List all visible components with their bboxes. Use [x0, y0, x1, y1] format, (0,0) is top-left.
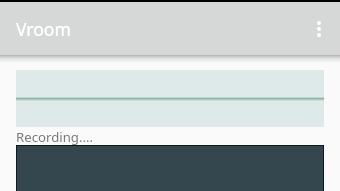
staticText: Vroom	[16, 17, 71, 41]
button[interactable]: More options	[299, 9, 339, 49]
button[interactable]: Vroom	[0, 2, 340, 55]
button[interactable]	[16, 70, 324, 99]
button[interactable]: Camera preview	[16, 145, 324, 191]
staticText: Recording....	[16, 128, 94, 146]
button[interactable]	[16, 99, 324, 127]
